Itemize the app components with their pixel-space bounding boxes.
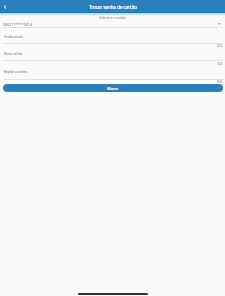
button[interactable]: Back	[0, 2, 10, 12]
button[interactable]: Alterar	[3, 84, 223, 92]
button[interactable]: Senha atual	[0, 28, 225, 42]
button[interactable]: Selecione o cartão	[0, 15, 225, 28]
button[interactable]: Nova senha	[0, 45, 225, 60]
staticText: Senha atual	[4, 34, 23, 39]
button[interactable]: Repita a senha	[0, 63, 225, 78]
staticText: Trocar senha de cartão	[89, 4, 137, 10]
staticText: Alterar	[107, 86, 119, 91]
staticText: Repita a senha	[4, 69, 28, 74]
staticText: Selecione o cartão	[0, 16, 225, 20]
staticText: 0/4	[0, 44, 222, 48]
staticText: 0/4	[0, 62, 222, 66]
staticText: Nova senha	[4, 51, 23, 56]
staticText: 0/4	[0, 80, 222, 84]
staticText: 5062******9014	[3, 22, 33, 27]
